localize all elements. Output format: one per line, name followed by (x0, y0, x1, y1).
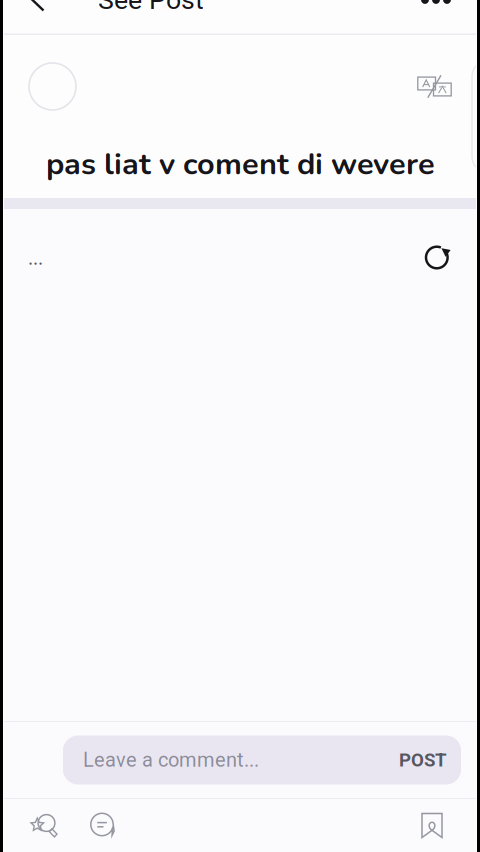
button[interactable]: Comments (74, 799, 132, 852)
button[interactable]: Back (16, 0, 60, 22)
staticText: Leave a comment... (83, 748, 259, 772)
button[interactable]: Refresh (415, 237, 460, 279)
staticText: ... (28, 246, 43, 270)
staticText: POST (399, 749, 447, 771)
staticText: See Post (98, 0, 204, 16)
button[interactable]: Translate (409, 66, 464, 106)
button[interactable]: POST (389, 737, 447, 783)
button[interactable]: More options (414, 0, 458, 22)
button[interactable]: Saved (403, 799, 461, 852)
staticText: pas liat v coment di wevere (46, 143, 435, 185)
button[interactable]: Discover (16, 799, 74, 852)
